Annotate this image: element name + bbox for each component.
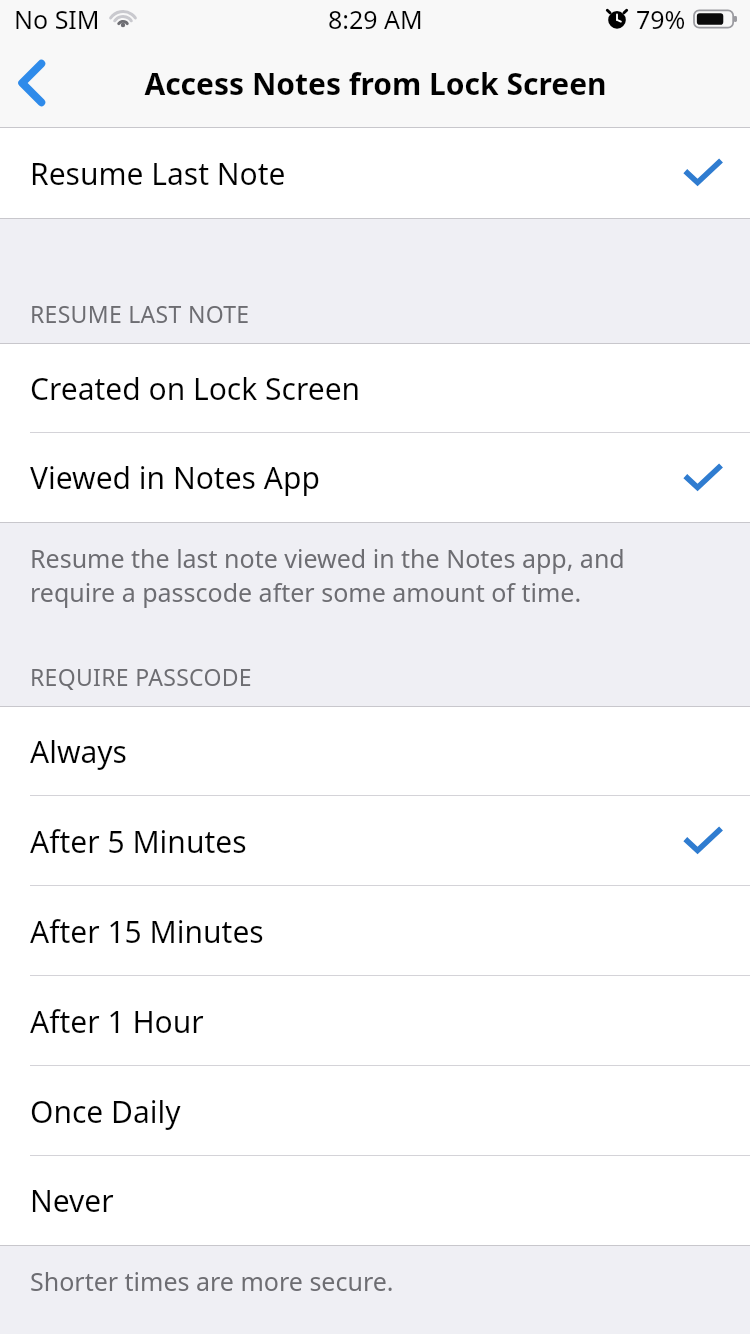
button[interactable]: Resume Last Note (0, 128, 750, 218)
staticText: Created on Lock Screen (30, 368, 361, 409)
staticText: After 5 Minutes (30, 821, 247, 862)
staticText: REQUIRE PASSCODE (30, 661, 252, 692)
button[interactable]: Created on Lock Screen (0, 344, 750, 433)
staticText: Always (30, 731, 127, 772)
staticText: After 15 Minutes (30, 911, 264, 952)
staticText: Never (30, 1180, 114, 1221)
button[interactable]: Once Daily (0, 1066, 750, 1156)
button[interactable]: Back (0, 46, 72, 120)
button[interactable]: After 15 Minutes (0, 886, 750, 976)
staticText: Resume Last Note (30, 153, 286, 194)
staticText: After 1 Hour (30, 1001, 204, 1042)
staticText: 8:29 AM (328, 2, 423, 36)
staticText: Viewed in Notes App (30, 457, 320, 498)
staticText: 79% (636, 2, 686, 36)
staticText: No SIM (14, 2, 100, 36)
staticText: Shorter times are more secure. (30, 1264, 394, 1298)
staticText: Once Daily (30, 1091, 181, 1132)
staticText: Resume the last note viewed in the Notes… (30, 541, 625, 609)
button[interactable]: After 1 Hour (0, 976, 750, 1066)
button[interactable]: Never (0, 1156, 750, 1245)
button[interactable]: Always (0, 707, 750, 796)
staticText: RESUME LAST NOTE (30, 298, 250, 329)
button[interactable]: After 5 Minutes (0, 796, 750, 886)
staticText: Access Notes from Lock Screen (144, 63, 607, 104)
button[interactable]: Viewed in Notes App (0, 433, 750, 522)
